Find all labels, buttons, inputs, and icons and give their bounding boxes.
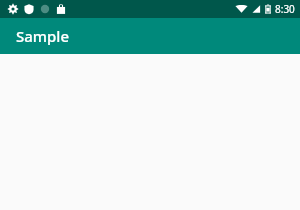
other: Battery xyxy=(264,3,272,15)
staticText: 8:30 xyxy=(275,2,295,16)
other: Wi-Fi xyxy=(235,3,248,15)
other: Store notification xyxy=(55,3,67,15)
other: Security notification xyxy=(23,3,35,15)
staticText: Sample xyxy=(16,26,69,46)
other: Notification xyxy=(39,3,51,15)
other: Cellular signal xyxy=(250,3,261,15)
other: Settings notification xyxy=(7,3,19,15)
button[interactable]: Sample xyxy=(0,18,300,54)
